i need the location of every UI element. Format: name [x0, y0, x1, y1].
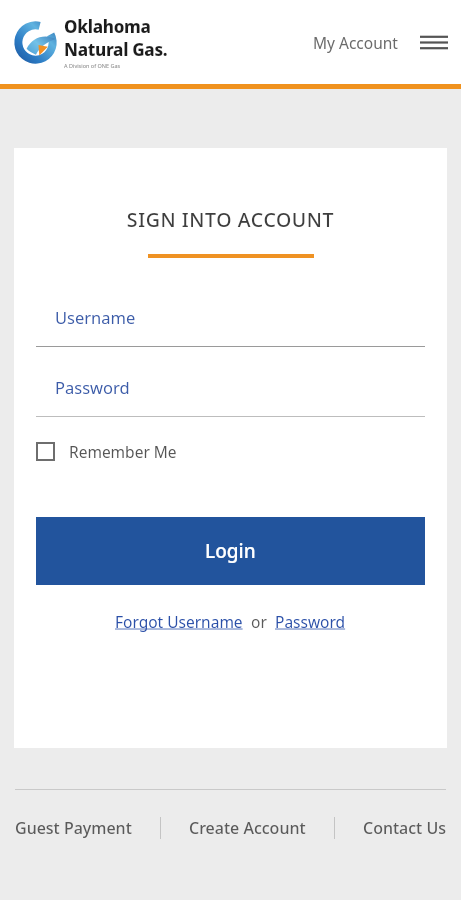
- button[interactable]: Username: [36, 306, 425, 347]
- staticText: Login: [205, 538, 256, 564]
- staticText: Natural Gas.: [64, 38, 168, 61]
- staticText: Remember Me: [69, 441, 177, 462]
- staticText: Forgot Username: [115, 611, 243, 632]
- staticText: Contact Us: [363, 817, 446, 839]
- staticText: My Account: [313, 32, 398, 53]
- button[interactable]: Oklahoma Natural Gas home: [9, 15, 168, 69]
- button[interactable]: My Account: [309, 26, 402, 59]
- button[interactable]: Create Account: [189, 811, 306, 845]
- staticText: Password: [55, 376, 130, 398]
- staticText: Username: [55, 306, 136, 328]
- button[interactable]: Remember Me: [36, 435, 177, 468]
- staticText: Password: [275, 611, 346, 632]
- button[interactable]: Password: [36, 376, 425, 417]
- staticText: SIGN INTO ACCOUNT: [14, 206, 447, 233]
- button[interactable]: Password: [275, 608, 346, 635]
- staticText: Oklahoma: [64, 15, 151, 38]
- staticText: Create Account: [189, 817, 306, 839]
- staticText: Guest Payment: [15, 817, 132, 839]
- button[interactable]: Forgot Username: [115, 608, 243, 635]
- staticText: or: [243, 611, 275, 632]
- button[interactable]: Login: [36, 517, 425, 585]
- button[interactable]: Menu: [416, 27, 452, 58]
- button[interactable]: Contact Us: [363, 811, 446, 845]
- staticText: A Division of ONE Gas: [64, 62, 121, 69]
- button[interactable]: Guest Payment: [15, 811, 132, 845]
